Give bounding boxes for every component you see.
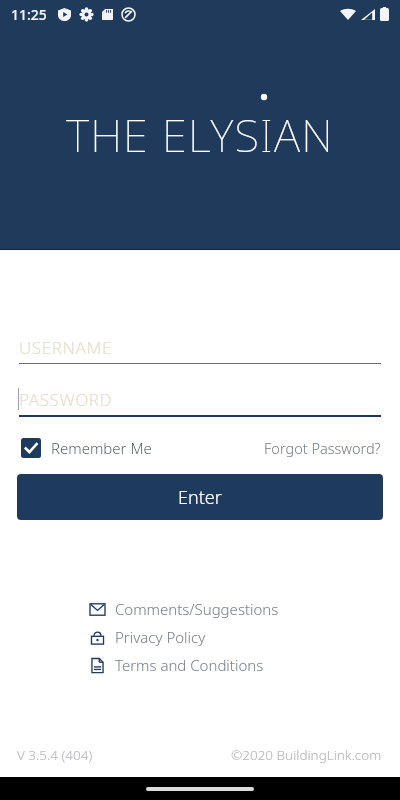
other: Privacy Policy bbox=[90, 630, 105, 645]
staticText: Enter bbox=[178, 485, 222, 510]
staticText: PASSWORD bbox=[19, 388, 113, 411]
button[interactable]: Remember Me bbox=[21, 438, 152, 458]
button[interactable]: Terms and Conditions bbox=[87, 655, 313, 675]
staticText: V 3.5.4 (404) bbox=[17, 746, 93, 764]
other: Comments and Suggestions bbox=[90, 602, 105, 617]
staticText: THE ELYSIAN bbox=[0, 104, 400, 165]
button[interactable]: USERNAME bbox=[19, 334, 381, 364]
staticText: Remember Me bbox=[51, 438, 152, 458]
staticText: Terms and Conditions bbox=[115, 655, 264, 675]
staticText: Privacy Policy bbox=[115, 627, 206, 647]
button[interactable]: Enter bbox=[17, 474, 383, 520]
button[interactable]: Privacy Policy bbox=[87, 627, 313, 647]
staticText: 11:25 bbox=[11, 5, 47, 24]
other: Terms and Conditions bbox=[90, 658, 105, 673]
button[interactable]: PASSWORD bbox=[19, 386, 381, 417]
staticText: Comments/Suggestions bbox=[115, 599, 279, 619]
staticText: USERNAME bbox=[19, 336, 112, 359]
staticText: Forgot Password? bbox=[264, 438, 381, 458]
button[interactable]: Forgot Password? bbox=[264, 438, 381, 458]
staticText: ©2020 BuildingLink.com bbox=[231, 746, 382, 764]
button[interactable]: Comments and Suggestions bbox=[87, 599, 313, 619]
